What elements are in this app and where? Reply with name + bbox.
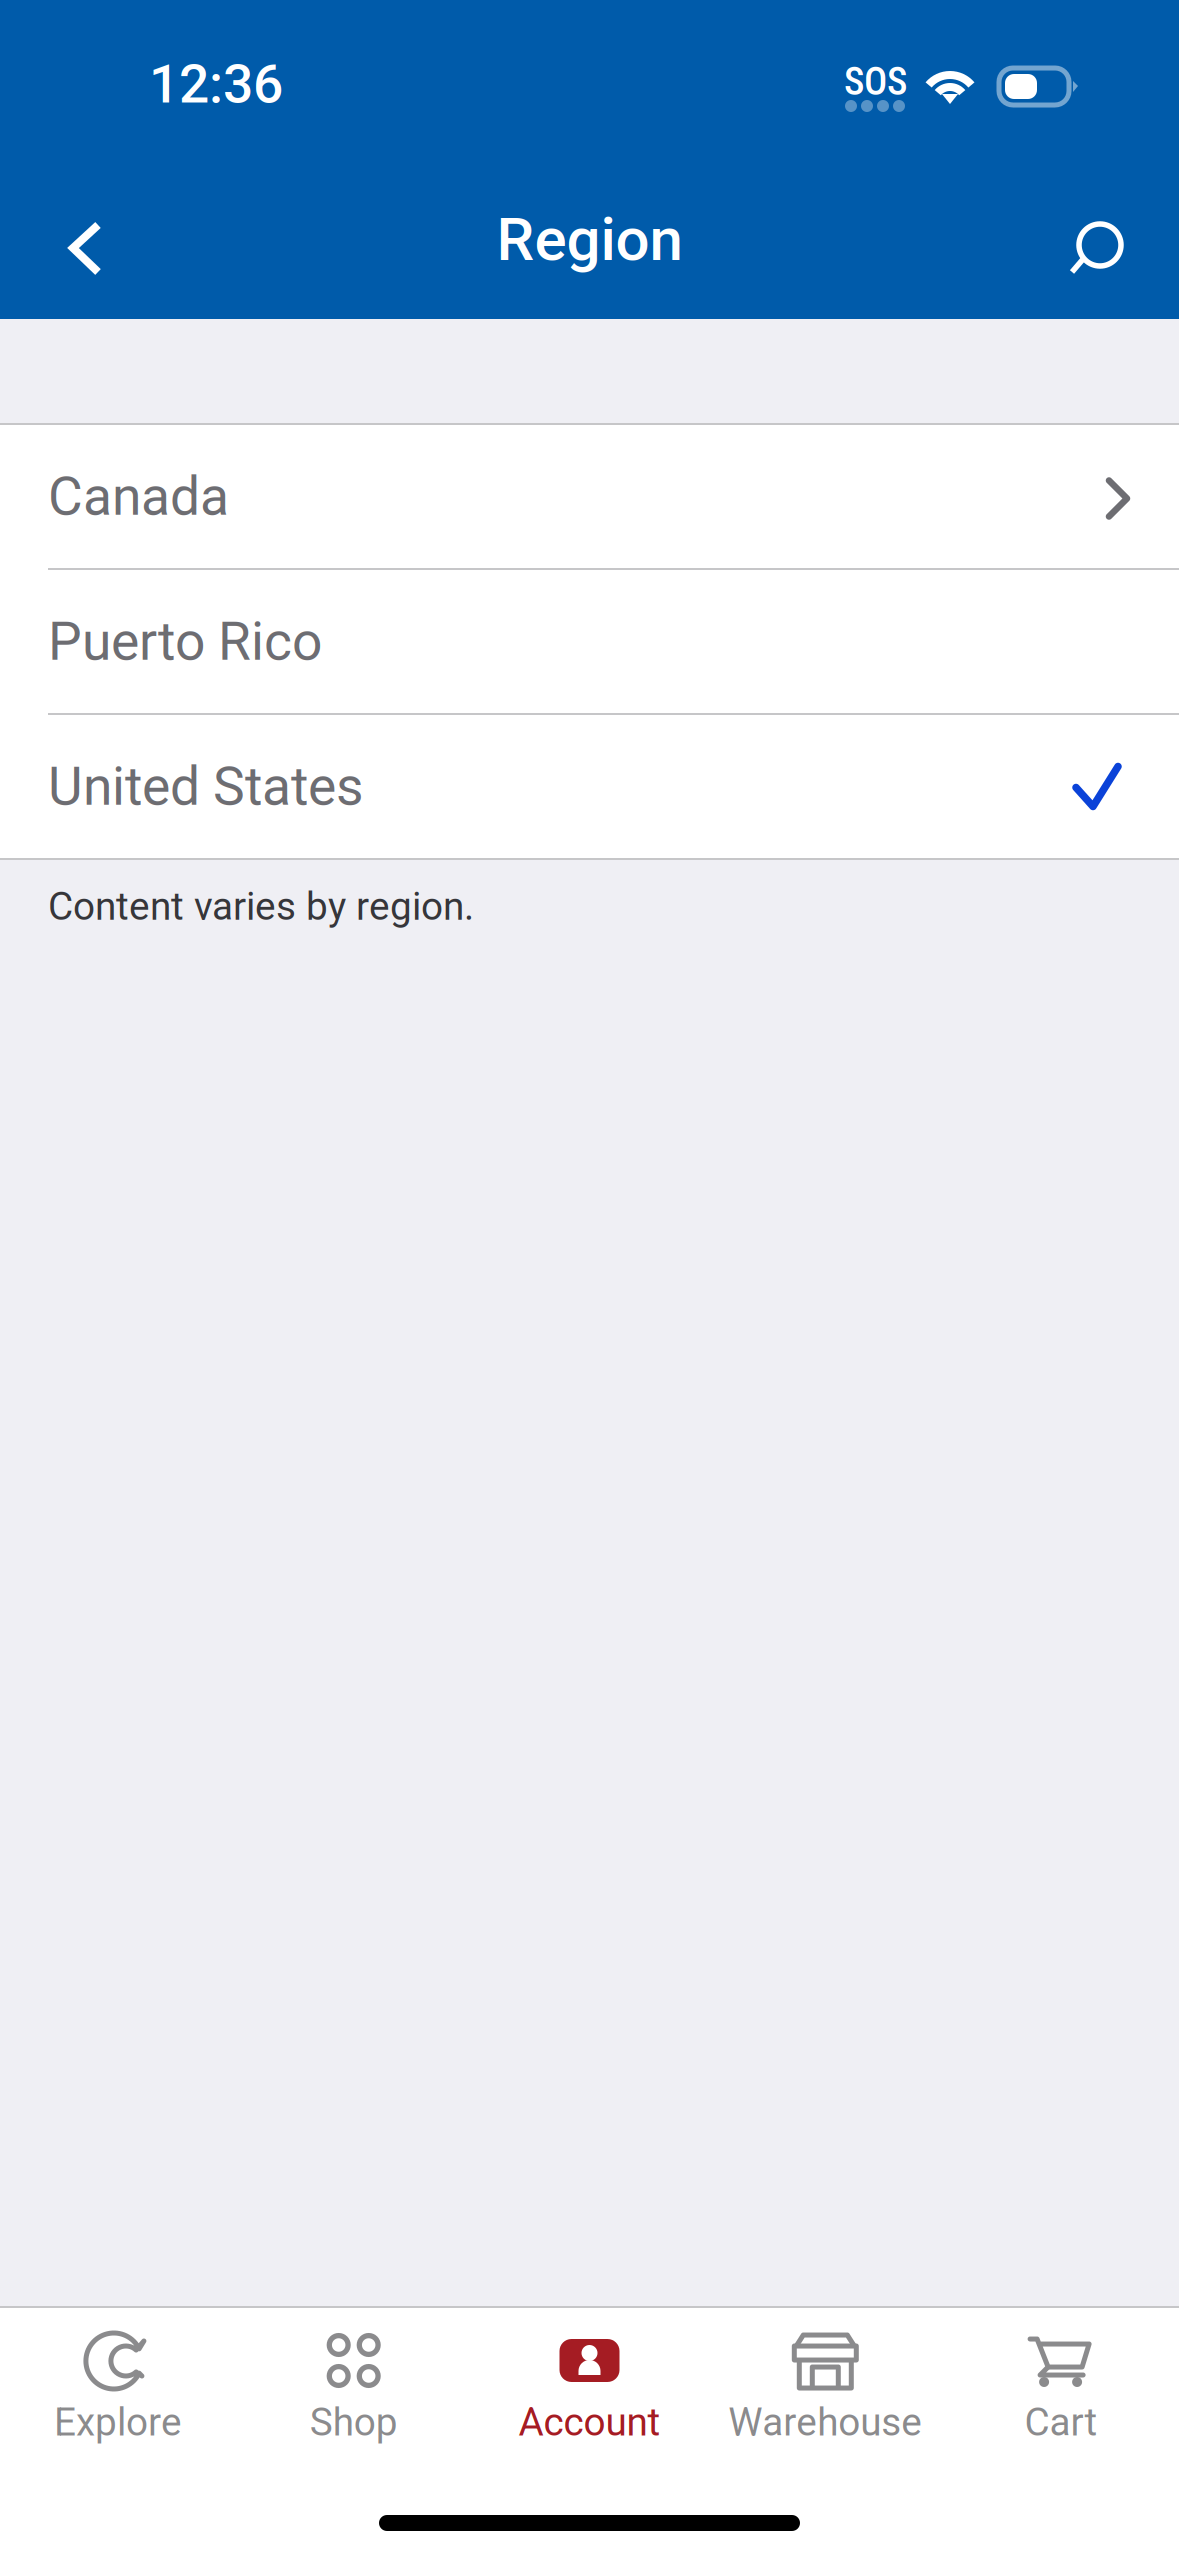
staticText: United States <box>48 755 364 818</box>
button[interactable]: United States <box>0 715 1179 858</box>
staticText: Explore <box>54 2400 182 2445</box>
staticText: Shop <box>310 2400 398 2445</box>
button[interactable]: Warehouse <box>707 2308 943 2454</box>
button[interactable]: Shop <box>236 2308 472 2454</box>
button[interactable]: Account <box>472 2308 707 2454</box>
staticText: 12:36 <box>149 53 283 115</box>
staticText: Warehouse <box>728 2400 922 2445</box>
button[interactable]: Cart <box>943 2308 1179 2454</box>
staticText: Canada <box>48 465 229 528</box>
staticText: Account <box>518 2400 660 2445</box>
button[interactable]: Puerto Rico <box>0 570 1179 713</box>
button[interactable]: Back <box>48 195 158 305</box>
button[interactable]: Search <box>1045 195 1155 305</box>
staticText: SOS <box>844 59 907 104</box>
staticText: Content varies by region. <box>48 884 474 929</box>
staticText: Cart <box>1025 2400 1098 2445</box>
staticText: Puerto Rico <box>48 610 322 673</box>
staticText: Region <box>496 204 682 275</box>
button[interactable]: Canada <box>0 425 1179 568</box>
button[interactable]: Explore <box>0 2308 236 2454</box>
